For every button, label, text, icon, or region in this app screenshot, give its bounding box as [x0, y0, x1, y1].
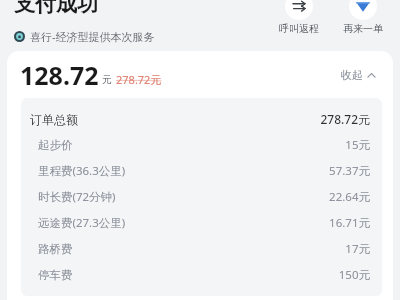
staticText: 17元 — [345, 241, 370, 257]
staticText: 57.37元 — [329, 163, 370, 179]
button[interactable]: 时长费(72分钟) — [30, 184, 370, 210]
staticText: 喜行-经济型提供本次服务 — [30, 29, 155, 44]
staticText: 278.72元 — [320, 111, 370, 127]
staticText: 15元 — [345, 137, 370, 153]
button[interactable]: 订单总额 — [30, 106, 370, 132]
staticText: 路桥费 — [38, 242, 73, 256]
staticText: 支付成功 — [14, 0, 98, 17]
staticText: 起步价 — [38, 138, 73, 152]
staticText: 128.72 — [20, 58, 99, 92]
button[interactable]: 远途费(27.3公里) — [30, 210, 370, 236]
staticText: 收起 — [341, 68, 363, 82]
staticText: 再来一单 — [343, 22, 383, 35]
staticText: 278.72元 — [116, 72, 162, 87]
staticText: 22.64元 — [329, 189, 370, 205]
button[interactable]: 路桥费 — [30, 236, 370, 262]
staticText: 停车费 — [38, 268, 73, 282]
button[interactable]: 起步价 — [30, 132, 370, 158]
staticText: 呼叫返程 — [279, 22, 319, 35]
staticText: 150元 — [338, 267, 370, 283]
staticText: 里程费(36.3公里) — [38, 163, 126, 179]
staticText: 元 — [102, 73, 112, 86]
button[interactable]: 里程费(36.3公里) — [30, 158, 370, 184]
staticText: 订单总额 — [30, 112, 78, 127]
staticText: 16.71元 — [329, 215, 370, 231]
button[interactable]: 停车费 — [30, 262, 370, 288]
button[interactable]: Call return trip — [272, 0, 326, 41]
button[interactable]: 收起 — [337, 64, 380, 86]
staticText: 远途费(27.3公里) — [38, 215, 126, 231]
staticText: 时长费(72分钟) — [38, 189, 116, 205]
button[interactable]: Order again — [336, 0, 390, 41]
